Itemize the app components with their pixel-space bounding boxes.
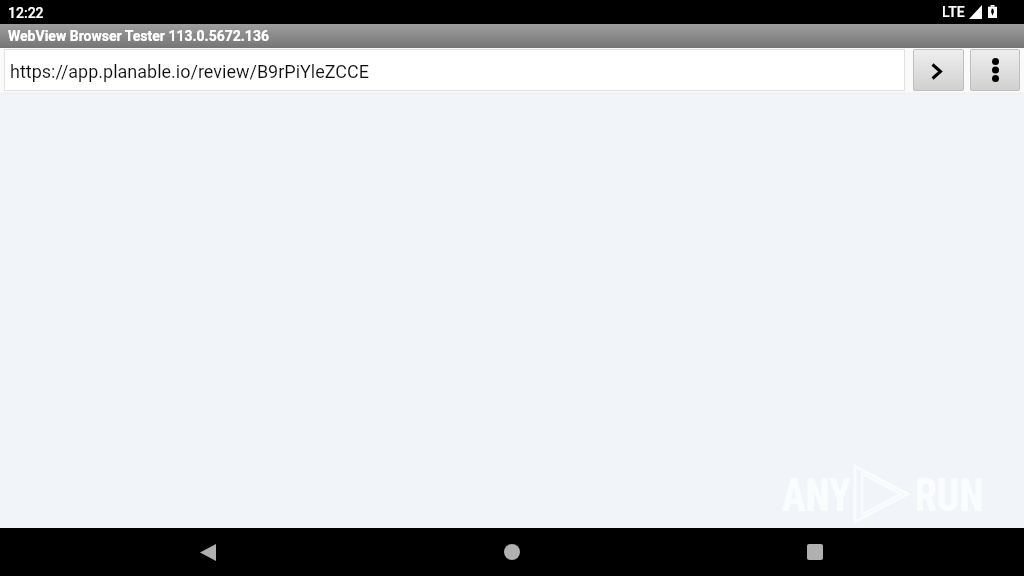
- button[interactable]: Go: [913, 49, 964, 91]
- button[interactable]: More options: [970, 49, 1020, 91]
- staticText: ANY: [782, 467, 851, 522]
- staticText: WebView Browser Tester 113.0.5672.136: [8, 28, 269, 44]
- button[interactable]: Recents: [767, 528, 863, 576]
- staticText: 12:22: [8, 5, 44, 21]
- button[interactable]: Back: [160, 528, 256, 576]
- button[interactable]: Home: [464, 528, 560, 576]
- button[interactable]: https://app.planable.io/review/B9rPiYleZ…: [4, 49, 905, 91]
- staticText: LTE: [942, 4, 965, 20]
- staticText: https://app.planable.io/review/B9rPiYleZ…: [10, 61, 370, 82]
- staticText: RUN: [915, 467, 984, 522]
